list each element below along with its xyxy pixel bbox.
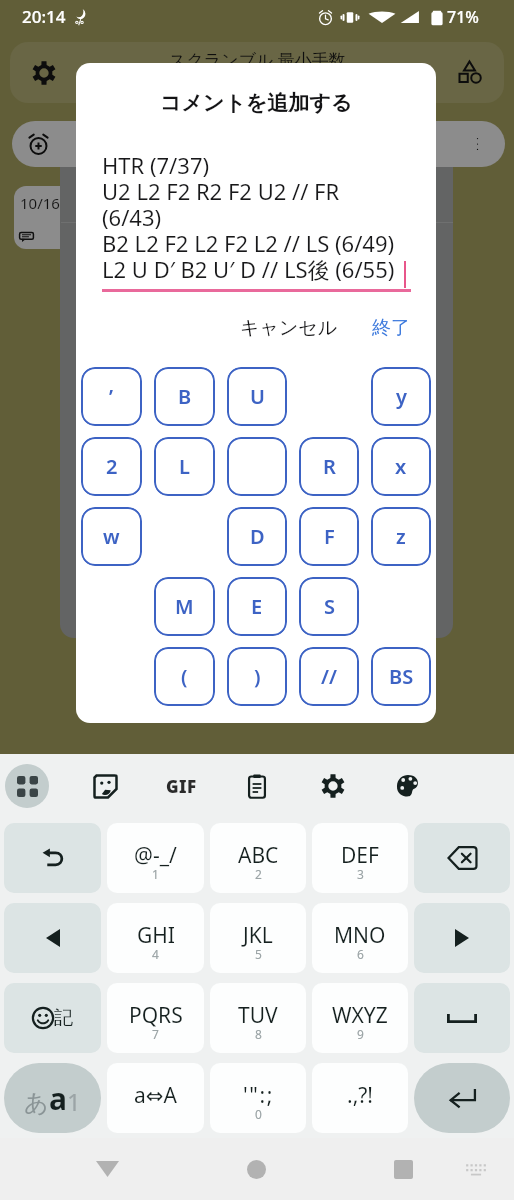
button[interactable]: GHI <box>107 903 204 973</box>
staticText: GIF <box>166 775 197 798</box>
staticText: 8 <box>255 1026 262 1042</box>
button[interactable]: U <box>227 367 287 426</box>
button[interactable]: Recents <box>359 1138 447 1200</box>
staticText: 3 <box>357 866 364 882</box>
staticText: @-_/ <box>134 841 177 870</box>
staticText: 2 <box>106 453 118 480</box>
staticText: 7 <box>152 1026 159 1042</box>
staticText: .,?! <box>347 1081 374 1110</box>
button[interactable]: Settings <box>10 42 504 103</box>
button[interactable]: Change input mode <box>4 1063 101 1133</box>
staticText: 2 <box>255 866 262 882</box>
staticText: 9 <box>357 1026 364 1042</box>
button[interactable]: Settings <box>311 764 355 808</box>
staticText: '":; <box>243 1081 274 1110</box>
staticText: ) <box>254 663 261 690</box>
button[interactable]: 2 <box>81 437 142 496</box>
button[interactable]: E <box>227 577 287 636</box>
button[interactable]: TUV <box>210 983 306 1053</box>
button[interactable] <box>227 437 287 496</box>
button[interactable]: '":; <box>210 1063 306 1133</box>
button[interactable]: ’ <box>81 367 142 426</box>
staticText: a⇔A <box>134 1081 177 1110</box>
button[interactable]: Add timer <box>12 121 505 167</box>
button[interactable]: Space <box>414 983 510 1053</box>
staticText: M <box>175 593 194 620</box>
button[interactable]: ABC <box>210 823 306 893</box>
staticText: 1 <box>152 866 159 882</box>
staticText: B <box>178 383 192 410</box>
staticText: a <box>49 1078 67 1119</box>
button[interactable]: Cursor right <box>414 903 510 973</box>
button[interactable]: ) <box>227 647 287 706</box>
staticText: // <box>321 663 337 690</box>
button[interactable]: M <box>154 577 215 636</box>
staticText: 10/16 <box>20 193 60 213</box>
staticText: S <box>324 593 335 620</box>
staticText: w <box>103 523 120 550</box>
button[interactable]: w <box>81 507 142 566</box>
button[interactable]: S <box>299 577 359 636</box>
staticText: D <box>250 523 265 550</box>
button[interactable]: キャンセル <box>234 310 344 346</box>
button[interactable]: GIF <box>159 764 203 808</box>
button[interactable]: x <box>371 437 431 496</box>
staticText: あ <box>24 1088 49 1118</box>
staticText: 1 <box>67 1085 81 1118</box>
staticText: HTR (7/37) U2 L2 F2 R2 F2 U2 // FR (6/43… <box>102 150 395 284</box>
button[interactable]: Settings <box>32 61 56 85</box>
button[interactable]: R <box>299 437 359 496</box>
button[interactable]: @-_/ <box>107 823 204 893</box>
button[interactable]: Back <box>63 1138 151 1200</box>
button[interactable]: Undo <box>4 823 101 893</box>
button[interactable]: Clipboard <box>235 764 279 808</box>
button[interactable]: More options <box>475 136 480 152</box>
staticText: y <box>396 383 407 410</box>
staticText: 6 <box>357 946 364 962</box>
button[interactable]: 10/16 <box>14 186 76 249</box>
staticText: PQRS <box>129 1001 183 1030</box>
button[interactable]: .,?! <box>312 1063 408 1133</box>
button[interactable]: z <box>371 507 431 566</box>
staticText: 20:14 <box>22 5 66 28</box>
staticText: 記 <box>54 1006 73 1030</box>
button[interactable]: D <box>227 507 287 566</box>
staticText: F <box>324 523 335 550</box>
button[interactable]: Add timer <box>29 134 48 154</box>
button[interactable]: Stickers <box>83 764 127 808</box>
button[interactable]: a⇔A <box>107 1063 204 1133</box>
staticText: TUV <box>238 1001 278 1030</box>
button[interactable]: Theme <box>386 764 430 808</box>
staticText: DEF <box>341 841 379 870</box>
button[interactable]: Emoji <box>4 983 101 1053</box>
button[interactable]: PQRS <box>107 983 204 1053</box>
button[interactable]: BS <box>371 647 431 706</box>
button[interactable]: y <box>371 367 431 426</box>
button[interactable]: Cursor left <box>4 903 101 973</box>
button[interactable]: Switch keyboard <box>444 1138 508 1200</box>
button[interactable]: WXYZ <box>312 983 408 1053</box>
staticText: 5 <box>255 946 262 962</box>
button[interactable]: Shapes <box>457 60 482 85</box>
button[interactable]: L <box>154 437 215 496</box>
button[interactable]: Delete <box>414 823 510 893</box>
button[interactable]: 終了 <box>368 310 414 346</box>
button[interactable]: B <box>154 367 215 426</box>
staticText: E <box>251 593 263 620</box>
button[interactable]: Home <box>212 1138 300 1200</box>
staticText: ’ <box>109 383 114 410</box>
button[interactable]: JKL <box>210 903 306 973</box>
button[interactable]: Apps <box>5 764 49 808</box>
button[interactable]: // <box>299 647 359 706</box>
button[interactable]: Enter <box>414 1063 510 1133</box>
staticText: z <box>396 523 406 550</box>
staticText: WXYZ <box>332 1001 388 1030</box>
button[interactable]: MNO <box>312 903 408 973</box>
button[interactable]: F <box>299 507 359 566</box>
staticText: BS <box>389 663 414 690</box>
button[interactable]: DEF <box>312 823 408 893</box>
staticText: ABC <box>238 841 279 870</box>
staticText: MNO <box>334 921 386 950</box>
button[interactable]: ( <box>154 647 215 706</box>
staticText: 71% <box>447 6 479 28</box>
